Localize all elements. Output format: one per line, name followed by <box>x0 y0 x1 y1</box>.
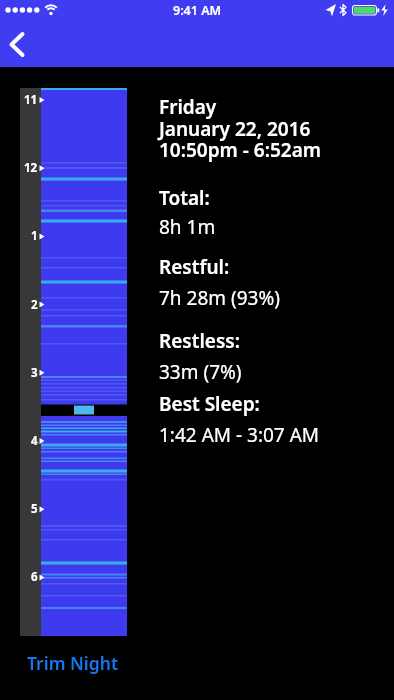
staticText: Trim Night <box>27 651 119 675</box>
staticText: 9:41 AM <box>173 2 222 19</box>
staticText: 6 <box>31 569 38 585</box>
staticText: 3 <box>31 365 38 381</box>
staticText: 8h 1m <box>159 214 216 240</box>
staticText: Restful: <box>159 254 230 280</box>
staticText: 1 <box>31 228 38 244</box>
staticText: 12 <box>24 160 38 176</box>
staticText: 7h 28m (93%) <box>159 285 280 311</box>
staticText: Best Sleep: <box>159 391 260 417</box>
staticText: 11 <box>24 92 38 108</box>
staticText: Friday <box>159 94 217 120</box>
staticText: 10:50pm - 6:52am <box>159 137 322 163</box>
staticText: 1:42 AM - 3:07 AM <box>159 422 320 448</box>
staticText: January 22, 2016 <box>159 116 311 142</box>
staticText: Restless: <box>159 328 240 354</box>
staticText: 4 <box>31 433 38 449</box>
staticText: Total: <box>159 185 210 211</box>
staticText: 5 <box>31 501 38 517</box>
staticText: 33m (7%) <box>159 359 242 385</box>
staticText: 2 <box>31 297 38 313</box>
